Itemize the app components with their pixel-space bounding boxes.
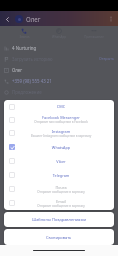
staticText: Олег bbox=[12, 67, 23, 73]
staticText: Viber bbox=[19, 159, 103, 164]
staticText: Почта bbox=[19, 185, 103, 190]
button[interactable]: Скопировать bbox=[4, 229, 114, 245]
button[interactable]: СМС bbox=[4, 100, 114, 113]
staticText: Звонок bbox=[19, 35, 30, 39]
staticText: СМС bbox=[19, 104, 103, 109]
staticText: Открыть bbox=[99, 56, 114, 61]
staticText: WhatsApp bbox=[19, 145, 103, 150]
button[interactable]: WhatsApp bbox=[4, 140, 114, 154]
staticText: WhatsApp bbox=[52, 35, 66, 39]
staticText: 4 Nurturing bbox=[12, 45, 37, 51]
button[interactable]: Email bbox=[4, 196, 114, 210]
staticText: Отправит сообщение в карточку bbox=[19, 190, 103, 194]
button[interactable]: More options bbox=[106, 14, 116, 24]
button[interactable]: Шаблоны Поздравлениями bbox=[4, 212, 114, 227]
staticText: +359 (98) 555 43 21 bbox=[12, 78, 52, 84]
button[interactable]: Facebook Messenger bbox=[4, 113, 114, 126]
button[interactable]: Instagram bbox=[4, 126, 114, 140]
staticText: Загрузить историю bbox=[12, 56, 53, 62]
button[interactable]: Telegram bbox=[4, 168, 114, 182]
staticText: Скопировать bbox=[46, 235, 72, 240]
staticText: Telegram bbox=[19, 173, 103, 178]
staticText: Шаблоны Поздравлениями bbox=[32, 217, 86, 222]
staticText: Отправит сообщение в карточку bbox=[19, 204, 103, 208]
staticText: Instagram bbox=[19, 129, 103, 134]
button[interactable]: Back bbox=[2, 14, 12, 24]
staticText: Вышлет Instagram сообщение в карточку bbox=[19, 134, 103, 138]
staticText: Предложение bbox=[12, 89, 42, 95]
button[interactable]: Звонок bbox=[7, 26, 41, 41]
staticText: Email bbox=[19, 199, 103, 204]
staticText: Facebook Messenger bbox=[19, 115, 103, 120]
button[interactable]: Viber bbox=[4, 154, 114, 168]
button[interactable]: Почта bbox=[4, 182, 114, 196]
staticText: Отправит как сообщение в Facebook bbox=[19, 120, 103, 124]
staticText: Приглашение bbox=[84, 35, 104, 39]
staticText: Олег bbox=[26, 15, 41, 23]
